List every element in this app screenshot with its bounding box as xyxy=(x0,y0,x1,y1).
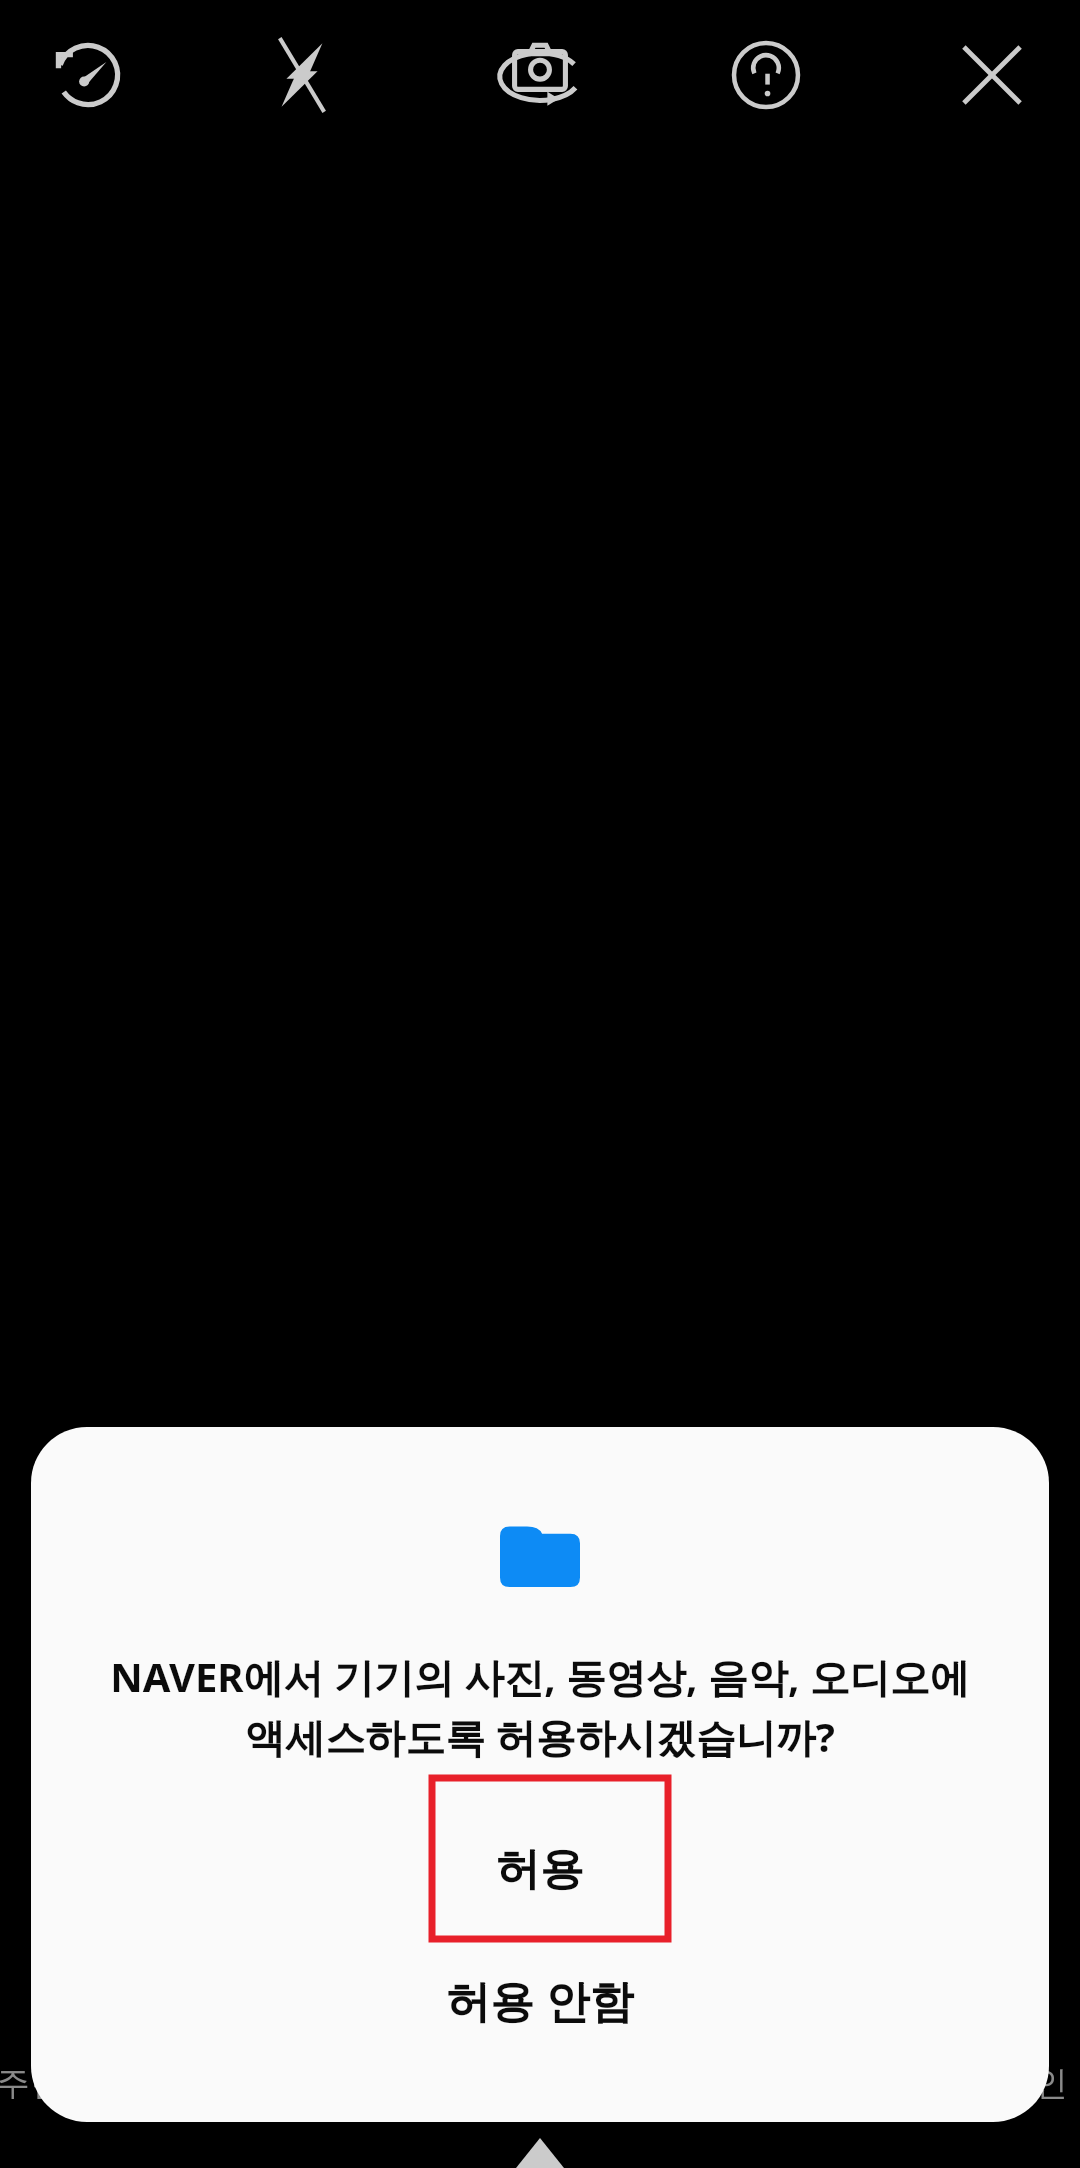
staticText: NAVER에서 기기의 사진, 동영상, 음악, 오디오에 액세스하도록 허용하… xyxy=(105,1649,975,1763)
button[interactable]: Flash off xyxy=(247,20,357,130)
button[interactable]: Close xyxy=(937,20,1047,130)
staticText: 허용 안함 xyxy=(446,1970,634,2030)
button[interactable]: 허용 xyxy=(360,1807,720,1931)
button[interactable]: 허용 안함 xyxy=(300,1945,780,2055)
staticText: 사인 xyxy=(1000,2062,1068,2105)
staticText: 주변 xyxy=(0,2062,64,2105)
staticText: 허용 xyxy=(496,1842,584,1897)
button[interactable]: Help xyxy=(711,20,821,130)
button[interactable]: Switch camera xyxy=(485,20,595,130)
button[interactable]: Timer xyxy=(33,20,143,130)
